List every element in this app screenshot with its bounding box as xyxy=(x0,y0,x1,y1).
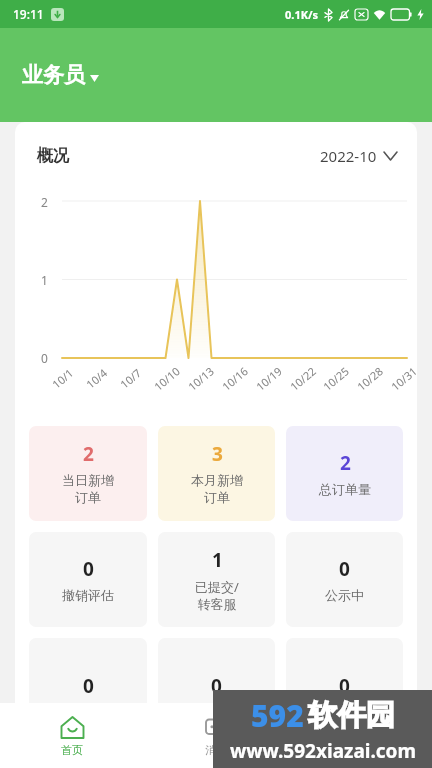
staticText: 概况 xyxy=(37,146,69,166)
button[interactable]: 0 xyxy=(286,638,403,733)
button[interactable]: 0 xyxy=(286,532,403,627)
staticText: 10/4 xyxy=(83,365,110,392)
other: 消息 xyxy=(204,715,229,740)
button[interactable]: 2 xyxy=(29,426,147,521)
button[interactable]: 2 xyxy=(286,426,403,521)
staticText: 10/25 xyxy=(320,363,352,394)
staticText: 10/13 xyxy=(185,363,217,394)
staticText: 2022-10 xyxy=(320,146,377,166)
staticText: 10/1 xyxy=(49,365,76,392)
button[interactable]: 我的 xyxy=(288,709,432,763)
staticText: 10/7 xyxy=(117,365,144,392)
staticText: 公示中 xyxy=(325,587,364,603)
staticText: www.592xiazai.com xyxy=(230,738,416,764)
staticText: 业务员 xyxy=(22,62,85,88)
staticText: 2 xyxy=(340,450,351,476)
button[interactable]: 业务员 xyxy=(22,62,99,88)
staticText: 软件园 xyxy=(308,697,395,734)
button[interactable]: 2022-10 xyxy=(320,146,397,166)
button[interactable]: 消息 xyxy=(144,709,288,763)
staticText: 0 xyxy=(83,673,94,699)
staticText: 10/31 xyxy=(388,363,417,394)
staticText: 首页 xyxy=(61,743,83,757)
staticText: 10/19 xyxy=(253,363,285,394)
staticText: 10/10 xyxy=(151,363,183,394)
button[interactable]: 0 xyxy=(29,532,147,627)
staticText: 2 xyxy=(83,441,94,467)
staticText: 我的 xyxy=(349,743,371,757)
staticText: 撤销评估 xyxy=(62,587,114,603)
staticText: 0 xyxy=(211,673,222,699)
staticText: 19:11 xyxy=(13,6,44,22)
button[interactable]: 首页 xyxy=(0,709,144,763)
staticText: 2 xyxy=(41,194,48,210)
staticText: 3 xyxy=(212,441,223,467)
staticText: 592 xyxy=(251,695,304,736)
staticText: 0 xyxy=(41,350,48,366)
other: 首页 xyxy=(60,715,85,740)
staticText: 1 xyxy=(41,272,48,288)
button[interactable]: 0 xyxy=(29,638,147,733)
staticText: 1 xyxy=(212,547,223,573)
staticText: 10/22 xyxy=(287,363,319,394)
staticText: 0.1K/s xyxy=(285,7,319,22)
staticText: 总订单量 xyxy=(319,481,371,497)
button[interactable]: 3 xyxy=(158,426,275,521)
staticText: 0 xyxy=(339,673,350,699)
staticText: 10/16 xyxy=(219,363,251,394)
staticText: 当日新增 订单 xyxy=(62,472,114,506)
staticText: 10/28 xyxy=(354,363,386,394)
staticText: 已提交/ 转客服 xyxy=(195,578,239,613)
button[interactable]: 0 xyxy=(158,638,275,733)
button[interactable]: 1 xyxy=(158,532,275,627)
staticText: 0 xyxy=(339,556,350,582)
other: 我的 xyxy=(348,715,373,740)
staticText: 0 xyxy=(83,556,94,582)
staticText: 消息 xyxy=(205,743,227,757)
staticText: 本月新增 订单 xyxy=(191,472,243,506)
